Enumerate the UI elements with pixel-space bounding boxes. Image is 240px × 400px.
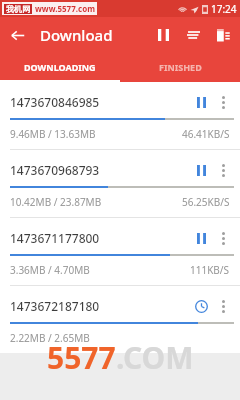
button[interactable]: Delete xyxy=(208,20,238,50)
staticText: DOWNLOADING xyxy=(24,61,96,73)
staticText: 10.42MB / 23.87MB xyxy=(10,195,102,209)
staticText: 5577 xyxy=(47,337,116,378)
staticText: 111KB/S xyxy=(190,263,230,277)
button[interactable]: Pause xyxy=(190,91,212,113)
button[interactable]: More options xyxy=(212,91,234,113)
staticText: .COM xyxy=(116,337,194,378)
button[interactable]: More options xyxy=(212,227,234,249)
button[interactable]: More options xyxy=(212,295,234,317)
button[interactable]: Sort xyxy=(178,20,208,50)
staticText: 1473672187180 xyxy=(10,298,100,314)
button[interactable]: 1473672187180 xyxy=(0,286,240,353)
button[interactable]: More options xyxy=(212,159,234,181)
button[interactable]: 1473670846985 xyxy=(0,82,240,149)
staticText: 17:24 xyxy=(211,2,237,16)
button[interactable]: Back xyxy=(0,18,34,52)
button[interactable]: 1473670968793 xyxy=(0,150,240,217)
staticText: 46.41KB/S xyxy=(182,127,230,141)
staticText: 1473670846985 xyxy=(10,94,100,110)
button[interactable]: 1473671177800 xyxy=(0,218,240,285)
staticText: www.5577.com xyxy=(35,3,95,14)
staticText: 56.25KB/S xyxy=(182,195,230,209)
staticText: 1473670968793 xyxy=(10,162,100,178)
staticText: 9.46MB / 13.63MB xyxy=(10,127,96,141)
button[interactable]: Queued xyxy=(190,295,212,317)
button[interactable]: FINISHED xyxy=(120,53,240,80)
button[interactable]: Pause xyxy=(190,227,212,249)
button[interactable]: DOWNLOADING xyxy=(0,53,120,80)
button[interactable]: Pause all xyxy=(148,20,178,50)
staticText: 我机网 xyxy=(6,4,30,14)
staticText: Download xyxy=(40,25,113,45)
staticText: 2.22MB / 2.65MB xyxy=(10,331,90,345)
button[interactable]: Pause xyxy=(190,159,212,181)
staticText: FINISHED xyxy=(159,61,202,73)
staticText: 1473671177800 xyxy=(10,230,100,246)
staticText: 3.36MB / 4.70MB xyxy=(10,263,90,277)
